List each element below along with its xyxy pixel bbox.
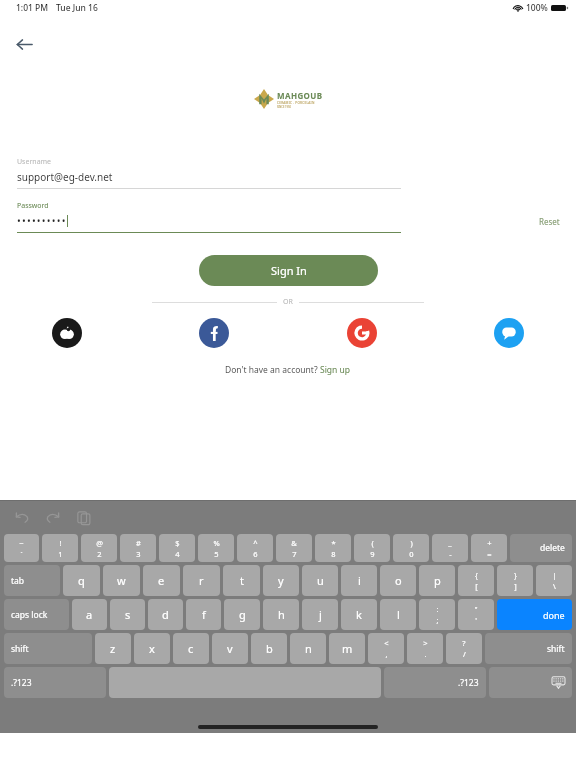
button[interactable]: v: [212, 633, 248, 664]
button[interactable]: a: [72, 599, 107, 630]
button[interactable]: (: [354, 534, 390, 562]
button[interactable]: Redo: [43, 508, 63, 528]
button[interactable]: +: [471, 534, 507, 562]
button[interactable]: j: [302, 599, 338, 630]
button[interactable]: g: [224, 599, 260, 630]
button[interactable]: _: [432, 534, 468, 562]
button[interactable]: Undo: [12, 508, 32, 528]
button[interactable]: t: [223, 565, 260, 596]
staticText: f: [202, 607, 206, 622]
staticText: ?: [462, 638, 466, 648]
staticText: done: [543, 609, 565, 621]
button[interactable]: l: [380, 599, 416, 630]
staticText: c: [188, 641, 194, 656]
staticText: -: [449, 549, 452, 559]
button[interactable]: .?123: [4, 667, 106, 698]
staticText: ;: [436, 615, 439, 625]
button[interactable]: h: [263, 599, 299, 630]
button[interactable]: y: [263, 565, 299, 596]
button[interactable]: q: [63, 565, 100, 596]
button[interactable]: Sign in with SMS: [494, 318, 524, 348]
button[interactable]: &: [276, 534, 312, 562]
button[interactable]: Password: [17, 201, 401, 233]
button[interactable]: Hide keyboard: [489, 667, 572, 698]
staticText: 9: [370, 549, 375, 559]
staticText: #: [136, 538, 141, 548]
button[interactable]: Sign In: [199, 255, 378, 286]
staticText: g: [239, 607, 246, 622]
button[interactable]: Paste: [74, 508, 94, 528]
button[interactable]: #: [120, 534, 156, 562]
button[interactable]: k: [341, 599, 377, 630]
staticText: i: [358, 573, 361, 588]
button[interactable]: done: [497, 599, 572, 630]
staticText: l: [397, 607, 400, 622]
staticText: <: [384, 638, 389, 648]
staticText: tab: [11, 575, 25, 587]
button[interactable]: !: [42, 534, 78, 562]
button[interactable]: Reset: [539, 216, 560, 227]
button[interactable]: Sign in with Apple: [52, 318, 82, 348]
button[interactable]: w: [103, 565, 140, 596]
button[interactable]: shift: [485, 633, 572, 664]
staticText: SINCE 1950: [277, 105, 291, 109]
button[interactable]: d: [148, 599, 183, 630]
button[interactable]: u: [302, 565, 338, 596]
button[interactable]: {: [458, 565, 494, 596]
staticText: %: [213, 538, 220, 548]
button[interactable]: s: [110, 599, 145, 630]
staticText: t: [240, 573, 244, 588]
button[interactable]: >: [407, 633, 443, 664]
button[interactable]: o: [380, 565, 416, 596]
button[interactable]: ^: [237, 534, 273, 562]
button[interactable]: f: [186, 599, 221, 630]
button[interactable]: e: [143, 565, 180, 596]
staticText: MAHGOUB: [277, 90, 323, 101]
button[interactable]: Username: [17, 157, 401, 189]
button[interactable]: caps lock: [4, 599, 69, 630]
button[interactable]: x: [134, 633, 170, 664]
button[interactable]: r: [183, 565, 220, 596]
button[interactable]: z: [95, 633, 131, 664]
staticText: k: [356, 607, 362, 622]
button[interactable]: Sign in with Google: [347, 318, 377, 348]
button[interactable]: tab: [4, 565, 60, 596]
button[interactable]: :: [419, 599, 455, 630]
button[interactable]: c: [173, 633, 209, 664]
staticText: &: [291, 538, 297, 548]
staticText: +: [487, 538, 492, 548]
button[interactable]: n: [290, 633, 326, 664]
button[interactable]: }: [497, 565, 533, 596]
button[interactable]: m: [329, 633, 365, 664]
staticText: Reset: [539, 216, 560, 227]
staticText: CERAMIC . PORCELAIN: [277, 101, 315, 105]
button[interactable]: <: [368, 633, 404, 664]
button[interactable]: $: [159, 534, 195, 562]
button[interactable]: ~: [4, 534, 39, 562]
staticText: 0: [409, 549, 414, 559]
button[interactable]: b: [251, 633, 287, 664]
button[interactable]: Sign in with Facebook: [199, 318, 229, 348]
button[interactable]: @: [81, 534, 117, 562]
button[interactable]: delete: [510, 534, 572, 562]
staticText: _: [448, 538, 452, 548]
button[interactable]: p: [419, 565, 455, 596]
staticText: 2: [97, 549, 102, 559]
button[interactable]: *: [315, 534, 351, 562]
button[interactable]: Sign up: [320, 364, 351, 376]
button[interactable]: |: [536, 565, 572, 596]
button[interactable]: shift: [4, 633, 92, 664]
staticText: Username: [17, 157, 52, 167]
button[interactable]: %: [198, 534, 234, 562]
button[interactable]: .?123: [384, 667, 486, 698]
staticText: x: [149, 641, 155, 656]
staticText: h: [278, 607, 285, 622]
button[interactable]: ): [393, 534, 429, 562]
button[interactable]: i: [341, 565, 377, 596]
staticText: 4: [175, 549, 180, 559]
staticText: {: [475, 570, 478, 580]
button[interactable]: ": [458, 599, 494, 630]
button[interactable]: ?: [446, 633, 482, 664]
button[interactable]: Back: [8, 28, 40, 60]
